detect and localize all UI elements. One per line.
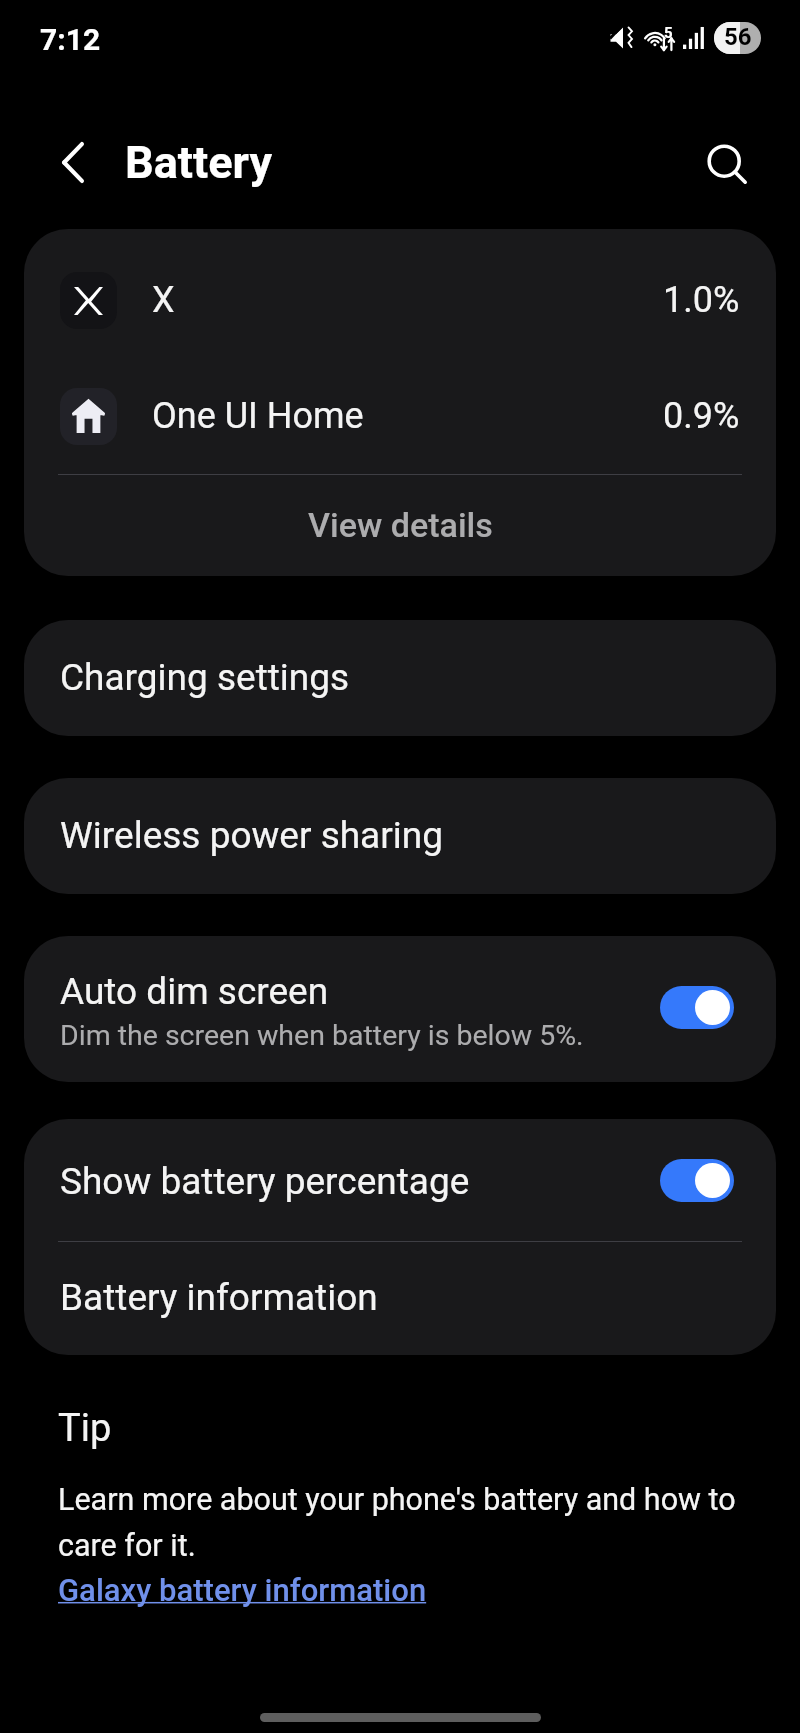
staticText: Wireless power sharing bbox=[60, 814, 443, 857]
staticText: X bbox=[152, 279, 175, 321]
button[interactable]: Wireless power sharing bbox=[24, 778, 776, 894]
staticText: Battery information bbox=[60, 1276, 378, 1319]
button[interactable]: View details bbox=[24, 475, 776, 576]
staticText: Charging settings bbox=[60, 656, 350, 699]
button[interactable]: X bbox=[24, 242, 776, 358]
button[interactable]: Show battery percentage bbox=[24, 1123, 776, 1241]
staticText: Dim the screen when battery is below 5%. bbox=[60, 1019, 584, 1052]
staticText: Tip bbox=[58, 1406, 112, 1451]
button[interactable]: Show battery percentage bbox=[660, 1159, 734, 1202]
staticText: Auto dim screen bbox=[60, 970, 329, 1013]
button[interactable]: Galaxy battery information bbox=[58, 1572, 427, 1608]
button[interactable]: Search bbox=[698, 135, 758, 195]
staticText: 5 bbox=[664, 24, 673, 42]
staticText: Learn more about your phone's battery an… bbox=[58, 1482, 750, 1564]
staticText: View details bbox=[308, 505, 493, 545]
staticText: 56 bbox=[724, 23, 752, 51]
button[interactable]: Charging settings bbox=[24, 620, 776, 736]
button[interactable]: Back bbox=[45, 134, 101, 190]
staticText: Battery bbox=[125, 136, 273, 189]
staticText: One UI Home bbox=[152, 395, 364, 437]
button[interactable]: One UI Home bbox=[24, 358, 776, 474]
staticText: 7:12 bbox=[40, 22, 101, 57]
staticText: 1.0% bbox=[663, 279, 740, 321]
staticText: 0.9% bbox=[663, 395, 740, 437]
button[interactable]: Battery information bbox=[24, 1242, 776, 1355]
button[interactable]: Auto dim screen bbox=[24, 936, 776, 1082]
button[interactable]: Auto dim screen bbox=[660, 986, 734, 1029]
staticText: Show battery percentage bbox=[60, 1160, 660, 1203]
